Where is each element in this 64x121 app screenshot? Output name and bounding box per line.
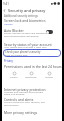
staticText: Security and privacy xyxy=(8,8,46,13)
button[interactable]: Microphone xyxy=(25,72,37,79)
button[interactable]: Screen lock and biometrics xyxy=(0,18,64,22)
staticText: Permissions used in the last 24 hours xyxy=(4,64,62,68)
staticText: Auto Blocker xyxy=(4,28,24,32)
button[interactable]: Security status of your account xyxy=(0,42,64,46)
button[interactable]: Auto Blocker toggle xyxy=(46,30,53,34)
staticText: while you browse xyxy=(4,92,25,95)
staticText: Internet privacy protection xyxy=(4,87,46,91)
staticText: Security status of your account xyxy=(4,42,52,46)
staticText: Controls and alerts xyxy=(4,97,34,101)
staticText: Check your phone's security xyxy=(5,50,41,54)
staticText: Your device was scanned 2 days ago xyxy=(4,45,47,48)
staticText: Control access to your camera, mic xyxy=(4,100,45,103)
staticText: 9:41 xyxy=(3,2,9,6)
staticText: Cookies and trackers are blocked xyxy=(4,90,43,93)
staticText: Scan for threats now xyxy=(5,54,28,57)
button[interactable]: Location xyxy=(45,72,54,79)
staticText: and location xyxy=(4,103,19,106)
staticText: Camera xyxy=(10,76,18,79)
button[interactable]: Internet privacy protection xyxy=(0,87,64,91)
button[interactable]: Controls and alerts xyxy=(0,97,64,101)
button[interactable]: Camera xyxy=(10,72,18,79)
staticText: Privacy xyxy=(4,59,13,63)
button[interactable]: Check your phone's security xyxy=(3,49,61,57)
staticText: Blocks harmful activity like malware xyxy=(4,31,46,34)
staticText: Screen lock and biometrics xyxy=(4,18,46,22)
staticText: More privacy settings xyxy=(4,110,38,114)
button[interactable]: Permissions used in the last 24 hours xyxy=(0,64,64,68)
staticText: and unauthorized commands xyxy=(4,34,39,37)
button[interactable]: More privacy settings xyxy=(0,110,64,114)
staticText: Microphone xyxy=(25,76,37,79)
staticText: Additional security settings xyxy=(4,14,38,18)
staticText: Location xyxy=(45,76,54,79)
button[interactable]: Auto Blocker xyxy=(0,28,64,32)
button[interactable]: Back xyxy=(2,8,7,13)
staticText: Update xyxy=(4,22,13,25)
